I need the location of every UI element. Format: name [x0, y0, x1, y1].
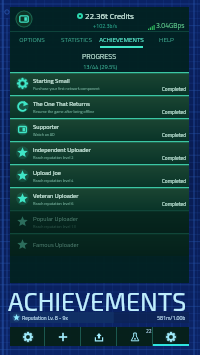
staticText: Completed [162, 85, 187, 93]
button[interactable]: Add [45, 327, 81, 346]
staticText: Reach reputation level 4 [33, 177, 74, 183]
staticText: Watch an AD [33, 131, 55, 137]
staticText: 22.36t Credits [85, 10, 134, 22]
staticText: 13/44 (29.5%) [83, 62, 117, 71]
button[interactable]: Famous Uploader [10, 233, 189, 256]
button[interactable]: Components [10, 327, 45, 346]
staticText: Resume the game after being offline [33, 108, 95, 114]
staticText: ACHIEVEMENTS [99, 35, 144, 45]
staticText: 22 [146, 327, 152, 335]
staticText: Famous Uploader [33, 240, 79, 249]
staticText: Veteran Uploader [33, 191, 79, 200]
button[interactable]: Starting Small [10, 72, 189, 95]
staticText: Completed [162, 200, 187, 208]
staticText: Independent Uploader [33, 145, 91, 154]
staticText: Completed [162, 108, 187, 116]
staticText: 3.04GBps [156, 20, 185, 30]
staticText: The One That Returns [33, 99, 90, 108]
staticText: Reach reputation level 2 [33, 154, 74, 160]
staticText: Reach reputation level 6 [33, 200, 74, 206]
staticText: Completed [162, 131, 187, 139]
button[interactable]: Research [117, 327, 153, 346]
button[interactable]: Veteran Uploader [10, 187, 189, 210]
staticText: Completed [162, 154, 187, 162]
staticText: ACHIEVEMENTS [8, 286, 187, 316]
button[interactable]: Supporter [10, 118, 189, 141]
staticText: Upload Joe [33, 168, 61, 177]
staticText: Reach reputation level 13 [33, 223, 76, 229]
button[interactable]: Popular Uploader [10, 210, 189, 233]
button[interactable]: Reputation Lv. 8 - 9x [10, 312, 189, 323]
button[interactable]: Screenshot [15, 10, 33, 28]
staticText: PROGRESS [82, 51, 117, 62]
button[interactable]: ACHIEVEMENTS [99, 31, 144, 49]
staticText: 581m/1.00b [157, 314, 186, 322]
button[interactable]: Settings [153, 327, 189, 346]
button[interactable]: Upload Joe [10, 164, 189, 187]
staticText: Supporter [33, 122, 60, 131]
staticText: Purchase your first network component [33, 85, 100, 91]
button[interactable]: OPTIONS [10, 31, 54, 49]
staticText: STATISTICS [61, 35, 92, 45]
staticText: Starting Small [33, 76, 70, 85]
staticText: Completed [162, 177, 187, 185]
staticText: OPTIONS [19, 35, 45, 45]
staticText: Popular Uploader [33, 214, 79, 223]
button[interactable]: The One That Returns [10, 95, 189, 118]
button[interactable]: Independent Uploader [10, 141, 189, 164]
button[interactable]: STATISTICS [54, 31, 99, 49]
button[interactable]: HELP [144, 31, 189, 49]
button[interactable]: Upload [81, 327, 117, 346]
staticText: +102.3b/s [93, 22, 118, 30]
staticText: HELP [159, 35, 174, 45]
staticText: Reputation Lv. 8 - 9x [22, 314, 68, 322]
